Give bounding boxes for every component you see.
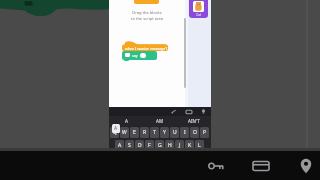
button[interactable]: AM [143,116,177,126]
staticText: D [138,142,142,149]
button[interactable]: Q [110,127,119,138]
staticText: O [193,129,197,136]
button[interactable]: P [200,127,209,138]
button[interactable]: O [190,127,199,138]
staticText: J [179,142,181,149]
staticText: A [125,118,128,124]
button[interactable]: L [195,140,204,151]
button[interactable]: A [115,140,124,151]
staticText: Q [113,129,117,136]
button[interactable]: D [135,140,144,151]
button[interactable]: Y [160,127,169,138]
staticText: P [203,129,207,136]
staticText: L [198,142,201,149]
staticText: F [148,142,151,149]
button[interactable]: T [150,127,159,138]
button[interactable]: H [165,140,174,151]
button[interactable]: Clipboard [170,108,177,115]
button[interactable]: Payment methods [251,156,271,176]
button[interactable]: Passwords [206,156,226,176]
staticText: R [143,129,147,136]
staticText: A [118,142,122,149]
button[interactable]: when I receive message1 [122,41,168,51]
button[interactable]: Settings [185,108,192,115]
staticText: say [132,53,138,58]
button[interactable]: I [180,127,189,138]
staticText: A [114,125,118,132]
staticText: AIN'T [188,118,200,124]
staticText: W [122,129,127,136]
staticText: Cat [196,13,201,17]
button[interactable]: K [185,140,194,151]
button[interactable]: A [109,116,143,126]
staticText: K [188,142,192,149]
staticText: when I receive message1 [125,46,168,51]
staticText: Y [163,129,166,136]
staticText: to the script area [131,16,163,21]
button[interactable]: F [145,140,154,151]
staticText: AM [156,118,164,124]
staticText: E [133,129,136,136]
button[interactable]: say [122,51,157,60]
button[interactable]: Voice input [200,108,207,115]
button[interactable]: U [170,127,179,138]
staticText: S [128,142,131,149]
button[interactable]: G [155,140,164,151]
staticText: H [168,142,172,149]
button[interactable]: E [130,127,139,138]
button[interactable]: AIN'T [177,116,211,126]
button[interactable]: R [140,127,149,138]
staticText: U [173,129,177,136]
staticText: G [158,142,162,149]
button[interactable]: Addresses [296,156,316,176]
button[interactable]: Cat [189,0,208,18]
staticText: Drag the blocks [132,10,162,15]
button[interactable]: W [120,127,129,138]
button[interactable] [134,0,159,4]
staticText: T [153,129,156,136]
button[interactable]: S [125,140,134,151]
staticText: I [184,129,186,136]
button[interactable]: J [175,140,184,151]
